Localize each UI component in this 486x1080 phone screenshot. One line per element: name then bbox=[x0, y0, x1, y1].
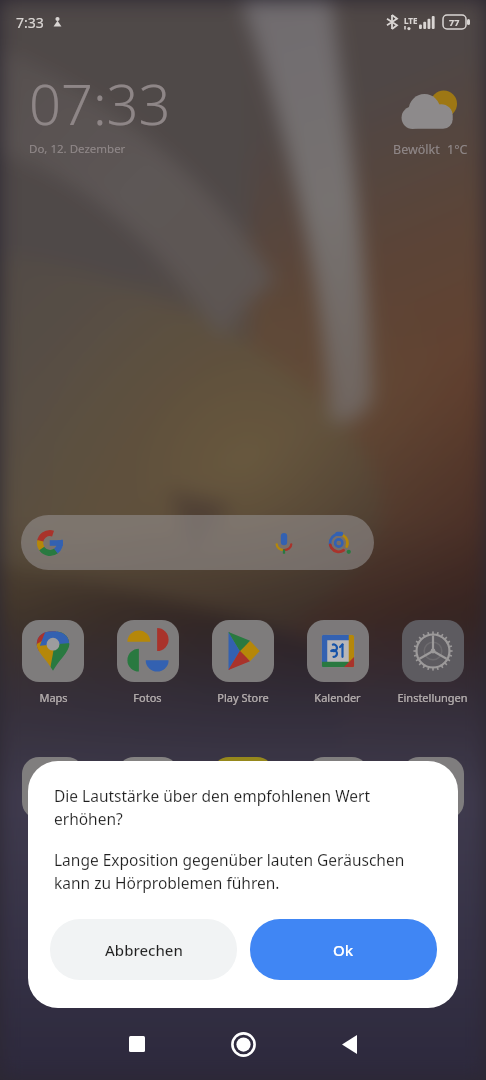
staticText: Lange Exposition gegenüber lauten Geräus… bbox=[54, 849, 434, 894]
staticText: Fotos bbox=[133, 690, 162, 705]
button[interactable]: Übersicht bbox=[102, 1009, 172, 1079]
staticText: Die Lautstärke über den empfohlenen Wert… bbox=[54, 785, 434, 830]
button[interactable]: Google Suche bbox=[21, 515, 374, 570]
staticText: Maps bbox=[39, 690, 68, 705]
button[interactable] bbox=[117, 757, 179, 819]
button[interactable]: Sprachsuche bbox=[268, 527, 299, 558]
staticText: Einstellungen bbox=[397, 690, 468, 705]
staticText: 07:33 bbox=[29, 65, 171, 141]
button[interactable]: Maps bbox=[6, 620, 100, 705]
button[interactable]: Abbrechen bbox=[50, 919, 237, 980]
button[interactable]: Bewölkt bbox=[393, 88, 468, 158]
button[interactable] bbox=[22, 757, 84, 819]
button[interactable]: Ok bbox=[250, 919, 437, 980]
button[interactable]: Einstellungen bbox=[385, 620, 480, 705]
button[interactable]: Google Lens bbox=[324, 527, 355, 558]
button[interactable]: Play Store bbox=[195, 620, 290, 705]
staticText: Abbrechen bbox=[105, 940, 183, 960]
staticText: Bewölkt bbox=[393, 141, 440, 158]
button[interactable] bbox=[212, 757, 274, 819]
staticText: 7:33 bbox=[16, 13, 44, 32]
staticText: LTE bbox=[404, 15, 418, 26]
button[interactable]: Google Suche bbox=[36, 529, 64, 557]
button[interactable]: Startbildschirm bbox=[208, 1009, 278, 1079]
staticText: Ok bbox=[333, 940, 354, 960]
staticText: Play Store bbox=[217, 690, 269, 705]
button[interactable]: Kalender bbox=[290, 620, 385, 705]
button[interactable]: Fotos bbox=[100, 620, 195, 705]
button[interactable]: 07:33 bbox=[29, 65, 171, 157]
staticText: Do, 12. Dezember bbox=[29, 141, 126, 157]
staticText: 1°C bbox=[447, 141, 468, 158]
staticText: 77 bbox=[449, 16, 460, 28]
button[interactable] bbox=[307, 757, 369, 819]
button[interactable] bbox=[402, 757, 464, 819]
button[interactable]: Zurück bbox=[314, 1009, 384, 1079]
staticText: Kalender bbox=[314, 690, 361, 705]
